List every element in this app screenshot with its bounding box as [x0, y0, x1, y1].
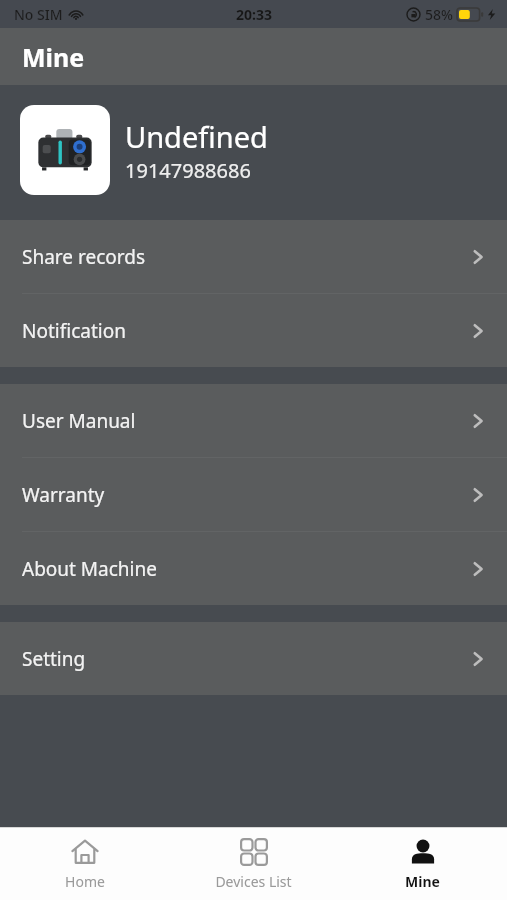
staticText: Setting [22, 646, 86, 672]
staticText: Warranty [22, 482, 105, 508]
staticText: 20:33 [236, 5, 272, 24]
staticText: Mine [405, 872, 440, 891]
button[interactable]: Mine [338, 828, 507, 900]
button[interactable]: User Manual [0, 384, 507, 457]
staticText: 19147988686 [125, 157, 251, 184]
staticText: No SIM [14, 5, 63, 24]
button[interactable]: Setting [0, 622, 507, 695]
staticText: Home [65, 872, 105, 891]
button[interactable]: Undefined [0, 85, 507, 215]
button[interactable]: Share records [0, 220, 507, 293]
staticText: User Manual [22, 408, 136, 434]
staticText: Share records [22, 244, 146, 270]
button[interactable]: Notification [0, 294, 507, 367]
button[interactable]: Warranty [0, 458, 507, 531]
button[interactable]: About Machine [0, 532, 507, 605]
staticText: Devices List [215, 872, 292, 891]
staticText: 58% [425, 5, 453, 24]
staticText: Notification [22, 318, 126, 344]
staticText: Mine [22, 40, 85, 74]
button[interactable]: Home [0, 828, 169, 900]
staticText: Undefined [125, 117, 268, 156]
staticText: About Machine [22, 556, 157, 582]
button[interactable]: Devices List [169, 828, 338, 900]
